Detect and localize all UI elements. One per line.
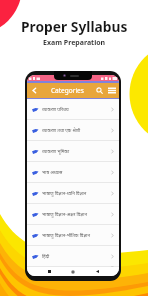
button[interactable]: Menu — [105, 83, 119, 98]
staticText: भाष अध्यास — [42, 169, 63, 175]
button[interactable]: Search — [94, 83, 105, 98]
staticText: Proper Syllabus — [21, 17, 128, 36]
button[interactable]: भाषाणु विज्ञान-भौतिक विज्ञान — [27, 225, 119, 245]
staticText: व्याकरण परिचय — [42, 106, 69, 112]
staticText: हिंदी — [42, 253, 50, 259]
button[interactable]: Back — [91, 267, 103, 276]
staticText: भाषाणु विज्ञान-अक्षर विज्ञान — [42, 211, 87, 217]
button[interactable]: Home — [67, 267, 79, 276]
staticText: व्याकरण भूमिका — [42, 148, 70, 154]
button[interactable]: Back — [27, 83, 41, 98]
staticText: व्याकरण तथा एक श्रेणी — [42, 127, 81, 133]
staticText: Exam Preparation — [43, 38, 106, 48]
button[interactable]: व्याकरण तथा एक श्रेणी — [27, 120, 119, 140]
button[interactable]: Recents — [43, 267, 55, 276]
staticText: Categories — [51, 86, 84, 95]
staticText: भाषाणु विज्ञान-भौतिक विज्ञान — [42, 232, 91, 238]
button[interactable]: व्याकरण भूमिका — [27, 141, 119, 161]
button[interactable]: भाषाणु विज्ञान-अक्षर विज्ञान — [27, 204, 119, 224]
button[interactable]: हिंदी — [27, 246, 119, 266]
button[interactable]: भाषाणु विज्ञान-ध्वनि विज्ञान — [27, 183, 119, 203]
staticText: भाषाणु विज्ञान-ध्वनि विज्ञान — [42, 190, 87, 196]
button[interactable]: व्याकरण परिचय — [27, 99, 119, 119]
button[interactable]: भाष अध्यास — [27, 162, 119, 182]
